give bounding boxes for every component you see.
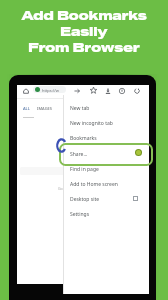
staticText: ALL: [23, 106, 30, 111]
button[interactable]: Home: [21, 86, 30, 95]
staticText: https://w: [42, 88, 59, 93]
staticText: Bookmarks: [70, 135, 97, 142]
button[interactable]: Download: [103, 86, 112, 95]
button[interactable]: ALL: [23, 106, 30, 111]
staticText: Settings: [70, 211, 90, 218]
staticText: Find in page: [70, 166, 99, 173]
button[interactable]: Page info: [117, 86, 126, 95]
staticText: Desktop site: [70, 196, 100, 203]
button[interactable]: Forward: [72, 86, 81, 95]
staticText: IMAGES: [37, 106, 52, 111]
button[interactable]: Find in page: [63, 162, 149, 177]
button[interactable]: New incognito tab: [63, 116, 149, 131]
button[interactable]: New tab: [63, 101, 149, 116]
button[interactable]: Share: [59, 143, 153, 166]
button[interactable]: IMAGES: [37, 106, 52, 111]
staticText: New tab: [70, 105, 90, 112]
button[interactable]: Desktop site: [63, 192, 149, 207]
button[interactable]: Settings: [63, 207, 149, 222]
button[interactable]: Add to Home screen: [63, 177, 149, 192]
staticText: Goo: [58, 186, 65, 191]
button[interactable]: Share...: [63, 147, 149, 162]
button[interactable]: Bookmarks: [63, 131, 149, 146]
button[interactable]: Reload: [132, 86, 141, 95]
staticText: Add to Home screen: [70, 181, 118, 188]
staticText: New incognito tab: [70, 120, 113, 127]
staticText: From Browser: [28, 39, 140, 55]
button[interactable]: Bookmark: [89, 86, 98, 95]
staticText: Easily: [60, 23, 108, 39]
button[interactable]: https://w: [33, 86, 66, 93]
staticText: Share...: [70, 151, 88, 158]
staticText: Add Bookmarks: [21, 7, 147, 23]
